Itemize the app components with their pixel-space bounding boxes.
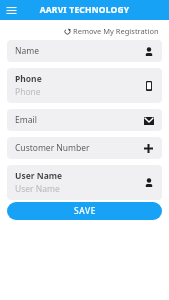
staticText: Name [15,45,39,57]
button[interactable]: Remove My Registration [62,25,161,37]
staticText: AARVI TECHNOLOGY [0,4,169,16]
staticText: User Name [15,170,63,182]
button[interactable]: Customer Number [7,137,162,159]
staticText: Remove My Registration [73,26,159,36]
staticText: SAVE [74,205,96,217]
staticText: Phone [15,86,41,98]
staticText: Email [15,114,37,126]
staticText: Phone [15,73,42,85]
staticText: User Name [15,183,60,195]
button[interactable]: Email [7,109,162,131]
button[interactable]: Name [7,40,162,62]
button[interactable]: Open navigation menu [4,3,18,17]
staticText: Customer Number [15,142,90,154]
button[interactable]: User Name [7,165,162,200]
button[interactable]: SAVE [7,202,162,220]
button[interactable]: Phone [7,68,162,103]
